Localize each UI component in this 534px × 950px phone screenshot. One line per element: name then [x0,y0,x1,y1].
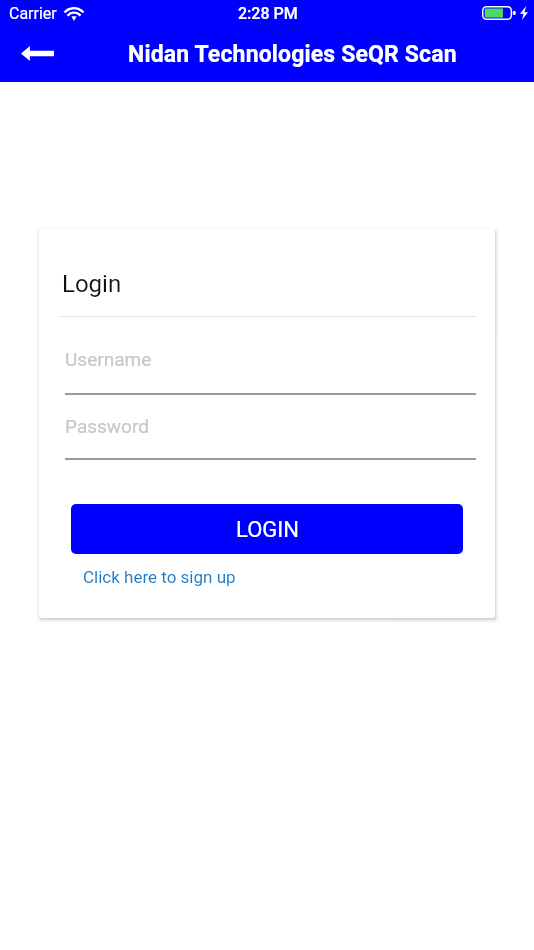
staticText: Carrier [9,4,57,23]
staticText: Click here to sign up [83,567,236,587]
staticText: Username [65,348,152,370]
staticText: LOGIN [236,517,299,543]
staticText: 2:28 PM [238,4,298,23]
button[interactable]: Username [65,341,476,395]
button[interactable]: Password [65,406,476,460]
button[interactable]: LOGIN [71,504,463,554]
button[interactable]: Back [13,29,61,77]
staticText: Password [65,415,149,437]
button[interactable]: Click here to sign up [78,563,240,591]
staticText: Login [62,270,122,298]
staticText: Nidan Technologies SeQR Scan [128,41,457,68]
